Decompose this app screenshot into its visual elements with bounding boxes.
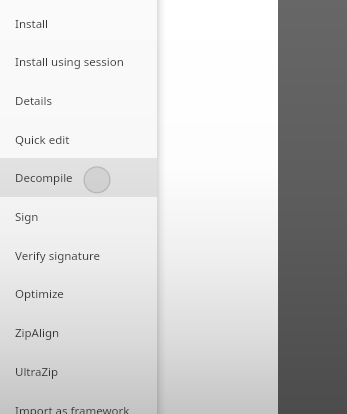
- staticText: Import as framework: [15, 403, 130, 414]
- staticText: Install using session: [15, 54, 124, 70]
- staticText: Optimize: [15, 286, 64, 302]
- button[interactable]: Install using session: [0, 42, 157, 81]
- staticText: Decompile: [15, 170, 73, 186]
- button[interactable]: Optimize: [0, 274, 157, 313]
- staticText: Details: [15, 93, 52, 109]
- staticText: Sign: [15, 209, 39, 225]
- button[interactable]: Sign: [0, 197, 157, 236]
- button[interactable]: Install: [0, 4, 157, 43]
- staticText: Verify signature: [15, 248, 101, 264]
- button[interactable]: UltraZip: [0, 352, 157, 391]
- button[interactable]: Verify signature: [0, 236, 157, 275]
- other: Touch ripple: [0, 158, 157, 197]
- button[interactable]: Details: [0, 81, 157, 120]
- button[interactable]: ZipAlign: [0, 313, 157, 352]
- staticText: ZipAlign: [15, 325, 60, 341]
- button[interactable]: Import as framework: [0, 391, 157, 414]
- staticText: UltraZip: [15, 364, 59, 380]
- staticText: Install: [15, 16, 49, 32]
- staticText: Quick edit: [15, 132, 70, 148]
- button[interactable]: Quick edit: [0, 120, 157, 159]
- button[interactable]: Decompile: [0, 158, 157, 197]
